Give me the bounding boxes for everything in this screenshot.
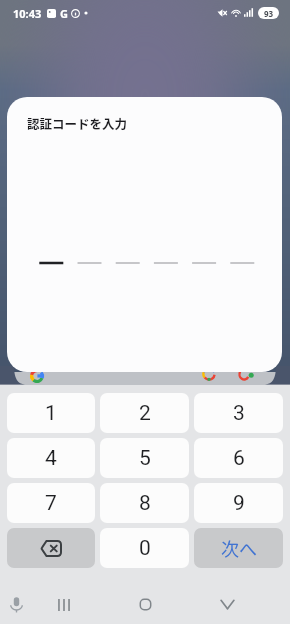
button[interactable]: 2 — [100, 393, 189, 433]
button[interactable]: 次へ — [194, 528, 283, 568]
staticText: 3 — [233, 401, 245, 426]
staticText: 10:43 — [13, 6, 42, 21]
staticText: 4 — [45, 446, 57, 471]
staticText: 5 — [139, 446, 151, 471]
staticText: 6 — [233, 446, 245, 471]
staticText: 93 — [264, 8, 274, 19]
button[interactable]: Recent apps — [51, 583, 77, 624]
staticText: 0 — [139, 536, 151, 561]
button[interactable]: 8 — [100, 483, 189, 523]
button[interactable]: 7 — [7, 483, 95, 523]
staticText: 8 — [139, 491, 151, 516]
staticText: 次へ — [221, 535, 257, 561]
button[interactable]: Backspace — [7, 528, 95, 568]
button[interactable]: 1 — [7, 393, 95, 433]
button[interactable]: Hide keyboard — [214, 583, 240, 624]
staticText: 1 — [45, 401, 57, 426]
button[interactable]: 0 — [100, 528, 189, 568]
staticText: 7 — [45, 491, 57, 516]
staticText: G — [60, 6, 68, 21]
staticText: 認証コードを入力 — [27, 114, 128, 132]
button[interactable]: 5 — [100, 438, 189, 478]
button[interactable]: Voice input — [3, 583, 29, 624]
staticText: 9 — [233, 491, 245, 516]
button[interactable]: 6 — [194, 438, 283, 478]
button[interactable]: 4 — [7, 438, 95, 478]
staticText: 2 — [139, 401, 151, 426]
button[interactable]: 9 — [194, 483, 283, 523]
button[interactable]: Home — [132, 583, 158, 624]
button[interactable]: 3 — [194, 393, 283, 433]
